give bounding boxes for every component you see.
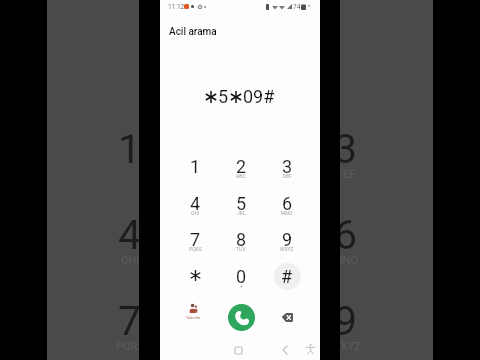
staticText: 0 — [236, 266, 247, 287]
staticText: TUV — [236, 246, 246, 252]
button[interactable] — [172, 258, 218, 294]
staticText: 9 — [282, 229, 293, 250]
button[interactable]: 6 — [264, 185, 310, 221]
button[interactable]: Home — [228, 340, 248, 360]
staticText: 11:12 — [168, 3, 185, 11]
staticText: 09# — [243, 86, 275, 107]
staticText: 4 — [118, 211, 139, 259]
staticText: GHI — [121, 254, 139, 267]
button[interactable]: 3 — [264, 148, 310, 184]
button[interactable]: 2 — [218, 148, 264, 184]
staticText: 3 — [282, 156, 293, 177]
staticText: 7 — [190, 229, 201, 250]
staticText: # — [281, 266, 293, 287]
button[interactable]: Accessibility — [300, 339, 320, 359]
staticText: 1 — [118, 125, 139, 173]
staticText: 2 — [236, 156, 247, 177]
button[interactable]: 8 — [218, 221, 264, 257]
staticText: 7 — [118, 297, 139, 345]
staticText: 4 — [190, 193, 201, 214]
staticText: GHI — [191, 210, 200, 216]
staticText: Yakınlar — [186, 315, 201, 320]
staticText: WXYZ — [280, 246, 294, 252]
button[interactable]: 0 — [218, 258, 264, 294]
staticText: 1 — [190, 156, 201, 177]
staticText: 8 — [236, 229, 247, 250]
button[interactable]: Call — [228, 304, 255, 331]
button[interactable]: Backspace — [272, 302, 302, 332]
staticText: DEF — [283, 173, 292, 179]
button[interactable]: 1 — [172, 148, 218, 184]
staticText: 74 — [293, 3, 301, 11]
staticText: 5 — [218, 86, 229, 107]
staticText: 6 — [340, 211, 358, 259]
staticText: MNO — [281, 210, 293, 216]
button[interactable]: 5 — [218, 185, 264, 221]
staticText: JKL — [237, 210, 246, 216]
staticText: 5 — [236, 193, 247, 214]
staticText: Acil arama — [169, 26, 217, 38]
button[interactable]: Contacts — [178, 303, 208, 329]
staticText: 6 — [282, 193, 293, 214]
button[interactable]: 9 — [264, 221, 310, 257]
button[interactable]: Back — [275, 340, 295, 360]
staticText: ABC — [236, 173, 246, 179]
staticText: + — [240, 283, 243, 289]
staticText: 3 — [340, 125, 358, 173]
staticText: WXYZ — [340, 340, 361, 353]
staticText: DEF — [340, 168, 356, 181]
staticText: PQRS — [189, 246, 202, 252]
staticText: MNO — [340, 254, 359, 267]
button[interactable]: # — [264, 258, 310, 294]
staticText: 9 — [340, 297, 358, 345]
button[interactable]: 4 — [172, 185, 218, 221]
button[interactable]: 7 — [172, 221, 218, 257]
staticText: PQRS — [116, 340, 139, 353]
